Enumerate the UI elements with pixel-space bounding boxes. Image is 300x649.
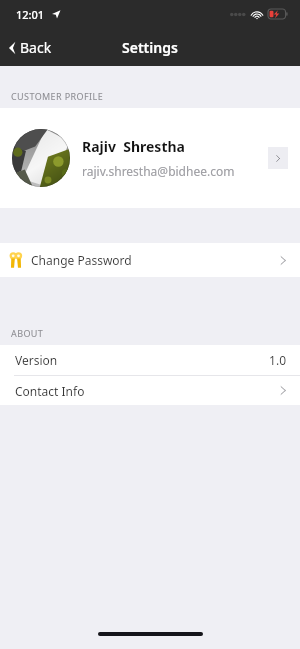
staticText: Change Password <box>31 252 280 268</box>
staticText: rajiv.shrestha@bidhee.com <box>82 163 235 179</box>
button[interactable]: Back <box>0 32 62 63</box>
staticText: 1.0 <box>269 352 286 368</box>
staticText: ABOUT <box>11 327 44 339</box>
staticText: Version <box>15 352 269 368</box>
staticText: Contact Info <box>15 383 280 399</box>
staticText: Settings <box>122 38 178 57</box>
button[interactable]: Contact Info <box>0 376 300 405</box>
staticText: 12:01 <box>16 7 45 22</box>
button[interactable]: Change Password <box>0 243 300 277</box>
staticText: CUSTOMER PROFILE <box>11 90 104 102</box>
staticText: Rajiv Shrestha <box>82 137 185 156</box>
button[interactable]: Edit profile <box>268 147 288 169</box>
staticText: Back <box>20 38 52 57</box>
button[interactable]: Version <box>0 345 300 375</box>
button[interactable]: Rajiv Shrestha <box>0 108 300 208</box>
